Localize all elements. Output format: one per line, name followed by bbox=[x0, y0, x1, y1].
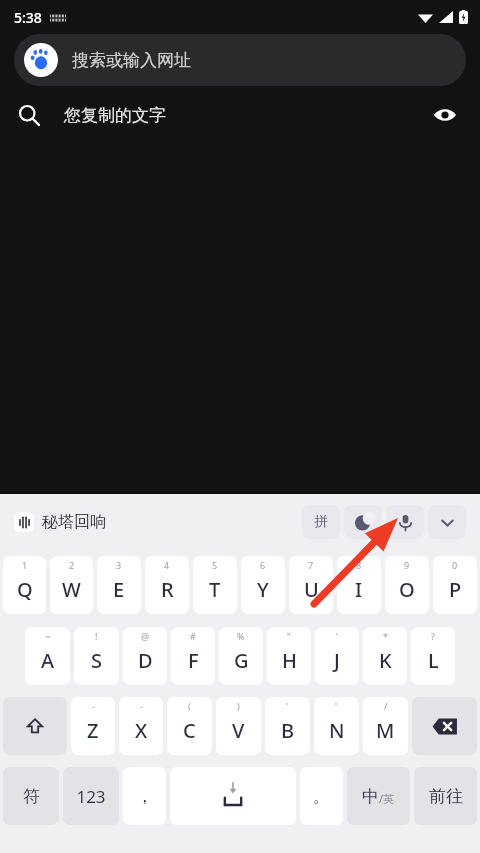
button[interactable]: 前往 bbox=[414, 767, 477, 825]
staticText: T bbox=[209, 576, 221, 603]
staticText: G bbox=[234, 647, 249, 674]
button[interactable]: 4 bbox=[145, 556, 189, 614]
staticText: K bbox=[379, 647, 392, 674]
staticText: 0 bbox=[452, 559, 458, 571]
staticText: 5:38 bbox=[14, 8, 42, 27]
button[interactable]: 。 bbox=[300, 767, 343, 825]
button[interactable]: 8 bbox=[337, 556, 381, 614]
staticText: - bbox=[92, 700, 95, 712]
staticText: 搜索或输入网址 bbox=[72, 50, 191, 71]
button[interactable]: Pinyin mode bbox=[302, 505, 340, 539]
staticText: S bbox=[91, 647, 102, 674]
staticText: C bbox=[183, 717, 196, 744]
staticText: 7 bbox=[308, 559, 314, 571]
staticText: 2 bbox=[69, 559, 75, 571]
staticText: ) bbox=[237, 700, 240, 712]
staticText: P bbox=[449, 576, 462, 603]
staticText: 9 bbox=[404, 559, 410, 571]
button[interactable]: 符 bbox=[3, 767, 59, 825]
staticText: J bbox=[334, 647, 340, 674]
staticText: E bbox=[113, 576, 125, 603]
button[interactable]: ) bbox=[216, 697, 261, 755]
button[interactable]: ' bbox=[315, 627, 359, 685]
button[interactable]: Night mode bbox=[344, 505, 382, 539]
staticText: U bbox=[304, 576, 319, 603]
staticText: / bbox=[384, 700, 388, 712]
button[interactable]: 123 bbox=[63, 767, 119, 825]
staticText: R bbox=[161, 576, 174, 603]
button[interactable]: 0 bbox=[433, 556, 477, 614]
button[interactable]: 中 bbox=[347, 767, 410, 825]
staticText: 中 bbox=[362, 786, 379, 807]
button[interactable]: 搜索或输入网址 bbox=[14, 34, 466, 86]
staticText: 4 bbox=[164, 559, 170, 571]
staticText: /英 bbox=[379, 791, 395, 806]
staticText: 123 bbox=[76, 785, 106, 808]
button[interactable]: 秘塔回响 bbox=[14, 512, 106, 532]
staticText: Y bbox=[257, 576, 269, 603]
button[interactable]: # bbox=[171, 627, 215, 685]
button[interactable]: ' bbox=[265, 697, 310, 755]
staticText: 3 bbox=[116, 559, 122, 571]
button[interactable]: ( bbox=[167, 697, 212, 755]
staticText: ' bbox=[336, 630, 339, 642]
staticText: Q bbox=[17, 576, 33, 603]
button[interactable]: 6 bbox=[241, 556, 285, 614]
staticText: I bbox=[355, 576, 363, 603]
button[interactable]: ! bbox=[74, 627, 119, 685]
button[interactable]: 5 bbox=[193, 556, 237, 614]
button[interactable]: 3 bbox=[97, 556, 141, 614]
staticText: F bbox=[188, 647, 199, 674]
button[interactable]: Backspace bbox=[412, 697, 477, 755]
button[interactable]: Show clipboard text bbox=[428, 98, 462, 132]
button[interactable]: @ bbox=[123, 627, 167, 685]
staticText: 。 bbox=[313, 786, 330, 807]
staticText: ~ bbox=[45, 630, 51, 642]
staticText: N bbox=[329, 717, 345, 744]
button[interactable]: / bbox=[363, 697, 408, 755]
button[interactable]: 9 bbox=[385, 556, 429, 614]
staticText: B bbox=[281, 717, 295, 744]
staticText: % bbox=[237, 630, 245, 642]
staticText: 秘塔回响 bbox=[42, 512, 106, 532]
button[interactable]: " bbox=[267, 627, 311, 685]
button[interactable]: ， bbox=[123, 767, 166, 825]
button[interactable]: 您复制的文字 bbox=[0, 86, 480, 144]
staticText: ! bbox=[95, 630, 98, 642]
button[interactable]: Space bbox=[170, 767, 296, 825]
staticText: ' bbox=[335, 700, 338, 712]
button[interactable]: - bbox=[71, 697, 115, 755]
staticText: 6 bbox=[260, 559, 266, 571]
staticText: Z bbox=[87, 717, 99, 744]
staticText: D bbox=[138, 647, 153, 674]
staticText: 符 bbox=[23, 786, 40, 807]
staticText: 5 bbox=[212, 559, 218, 571]
staticText: - bbox=[140, 700, 143, 712]
staticText: " bbox=[287, 630, 291, 642]
staticText: * bbox=[383, 630, 388, 642]
button[interactable]: Hide keyboard bbox=[428, 505, 466, 539]
staticText: M bbox=[376, 717, 395, 744]
button[interactable]: ~ bbox=[25, 627, 70, 685]
staticText: 8 bbox=[356, 559, 362, 571]
button[interactable]: 1 bbox=[3, 556, 46, 614]
button[interactable]: 2 bbox=[50, 556, 93, 614]
staticText: X bbox=[135, 717, 148, 744]
button[interactable]: Voice input bbox=[386, 505, 424, 539]
staticText: 拼 bbox=[314, 513, 328, 531]
button[interactable]: Shift bbox=[3, 697, 67, 755]
staticText: W bbox=[62, 576, 81, 603]
button[interactable]: - bbox=[119, 697, 163, 755]
staticText: L bbox=[428, 647, 439, 674]
button[interactable]: % bbox=[219, 627, 263, 685]
staticText: ? bbox=[431, 630, 435, 642]
staticText: # bbox=[190, 630, 196, 642]
button[interactable]: ' bbox=[314, 697, 359, 755]
staticText: ' bbox=[286, 700, 289, 712]
button[interactable]: ? bbox=[411, 627, 455, 685]
staticText: 1 bbox=[22, 559, 28, 571]
staticText: ， bbox=[136, 786, 153, 807]
button[interactable]: * bbox=[363, 627, 407, 685]
staticText: O bbox=[399, 576, 415, 603]
button[interactable]: 7 bbox=[289, 556, 333, 614]
